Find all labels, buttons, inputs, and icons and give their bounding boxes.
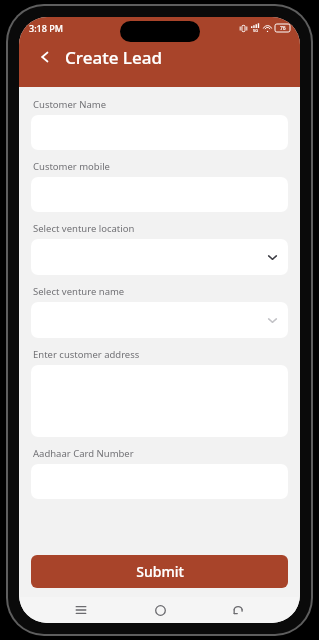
staticText: Customer Name <box>33 98 107 111</box>
staticText: Select venture location <box>33 222 135 235</box>
staticText: Create Lead <box>65 46 162 69</box>
staticText: Submit <box>136 562 184 581</box>
button[interactable]: Submit <box>31 555 288 588</box>
staticText: Customer mobile <box>33 160 110 173</box>
button[interactable]: Recent apps <box>64 597 98 623</box>
staticText: 76 <box>280 25 286 32</box>
staticText: 3:18 PM <box>29 22 63 34</box>
button[interactable]: Back <box>221 597 255 623</box>
staticText: Enter customer address <box>33 348 140 361</box>
staticText: Aadhaar Card Number <box>33 447 134 460</box>
staticText: Select venture name <box>33 285 125 298</box>
button[interactable]: Back <box>31 43 59 71</box>
button[interactable]: Open dropdown <box>31 239 288 275</box>
staticText: 5G <box>253 28 259 33</box>
button[interactable]: Home <box>143 597 177 623</box>
